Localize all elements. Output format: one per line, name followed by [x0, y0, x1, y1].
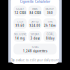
- staticText: 12 CIGS: [14, 11, 25, 15]
- staticText: TOTAL: [31, 45, 38, 49]
- staticText: WEEK: [32, 7, 38, 11]
- staticText: GOAL: [46, 32, 53, 36]
- staticText: NICOTINE: [14, 32, 26, 36]
- staticText: SAVED: [31, 20, 39, 23]
- staticText: TIME: [47, 20, 52, 23]
- staticText: STREAK: [30, 32, 39, 36]
- staticText: 84 CIGS: [29, 11, 40, 15]
- staticText: COST: [17, 20, 23, 23]
- staticText: Tap a value to edit your daily count: [11, 58, 59, 62]
- staticText: 2h 14m: [44, 24, 56, 27]
- staticText: 14 mg: [15, 37, 25, 40]
- staticText: $24.00: [29, 24, 40, 27]
- staticText: 360: [47, 11, 53, 15]
- staticText: MONTH: [45, 7, 54, 11]
- staticText: 8/day: [46, 37, 54, 40]
- staticText: 1,248 cigarettes: [23, 49, 47, 53]
- staticText: $9.60: [15, 24, 24, 27]
- staticText: 3 days: [30, 37, 39, 40]
- staticText: Cigarette Calculator: [20, 0, 50, 3]
- staticText: TODAY: [15, 7, 24, 11]
